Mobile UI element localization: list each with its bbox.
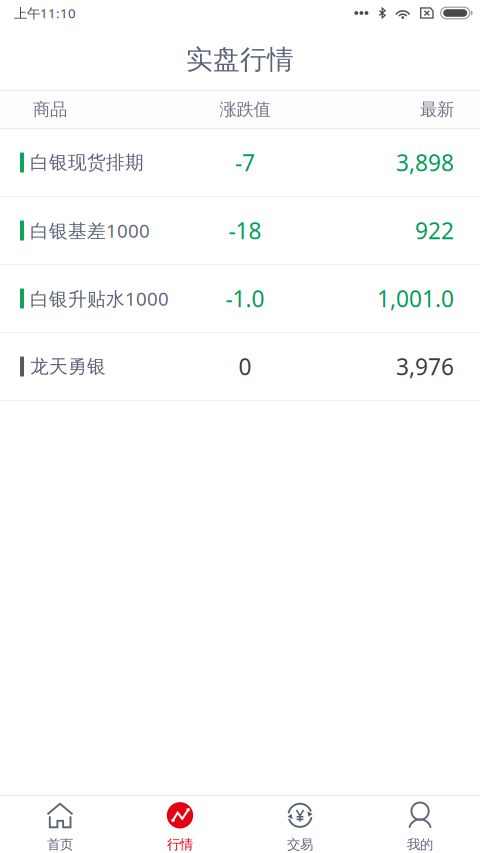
staticText: 行情	[167, 836, 193, 853]
button[interactable]: 交易	[240, 796, 360, 853]
staticText: 922	[415, 215, 454, 245]
staticText: 0	[238, 351, 251, 381]
staticText: 白银基差1000	[30, 218, 150, 243]
staticText: 商品	[33, 99, 67, 120]
staticText: 白银现货排期	[30, 151, 144, 174]
staticText: 我的	[407, 836, 433, 853]
button[interactable]: 白银升贴水1000	[0, 265, 480, 332]
staticText: 1,001.0	[377, 283, 454, 313]
staticText: -7	[235, 147, 255, 177]
button[interactable]: 白银现货排期	[0, 129, 480, 196]
staticText: 3,898	[396, 147, 454, 177]
staticText: 交易	[287, 836, 313, 853]
button[interactable]: 白银基差1000	[0, 197, 480, 264]
button[interactable]: 首页	[0, 796, 120, 853]
staticText: 首页	[47, 836, 73, 853]
button[interactable]: 行情	[120, 796, 240, 853]
staticText: 上午11:10	[14, 4, 76, 22]
staticText: -18	[228, 215, 261, 245]
staticText: 实盘行情	[186, 43, 294, 76]
staticText: 龙天勇银	[30, 355, 106, 378]
staticText: 3,976	[396, 351, 454, 381]
button[interactable]: 龙天勇银	[0, 333, 480, 400]
staticText: 最新	[420, 99, 454, 120]
button[interactable]: 我的	[360, 796, 480, 853]
staticText: 涨跌值	[219, 99, 270, 120]
staticText: -1.0	[225, 283, 264, 313]
staticText: 白银升贴水1000	[30, 286, 169, 311]
